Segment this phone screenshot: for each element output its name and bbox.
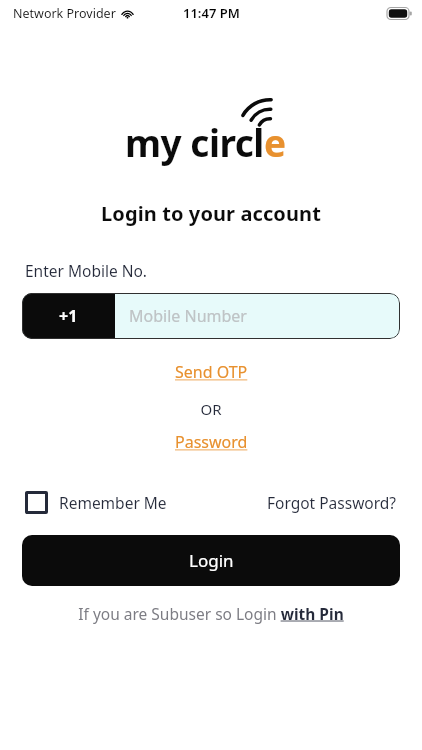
staticText: Network Provider <box>13 5 116 22</box>
staticText: Mobile Number <box>129 305 247 327</box>
staticText: my circl <box>125 117 264 167</box>
staticText: Remember Me <box>59 492 167 513</box>
button[interactable]: If you are Subuser so Login with Pin <box>78 603 344 624</box>
button[interactable]: Send OTP <box>169 360 254 384</box>
staticText: Enter Mobile No. <box>25 260 148 281</box>
staticText: Login to your account <box>0 200 422 227</box>
staticText: +1 <box>59 305 78 327</box>
staticText: Login <box>189 549 234 572</box>
button[interactable]: Remember Me <box>25 491 167 514</box>
staticText: e <box>264 117 287 167</box>
button[interactable]: Password <box>169 430 254 454</box>
button[interactable]: Login <box>22 535 400 586</box>
staticText: OR <box>0 399 422 419</box>
staticText: 11:47 PM <box>183 4 240 22</box>
button[interactable]: Forgot Password? <box>267 492 397 513</box>
button[interactable]: +1 <box>22 293 115 339</box>
button[interactable]: +1 <box>22 293 400 339</box>
